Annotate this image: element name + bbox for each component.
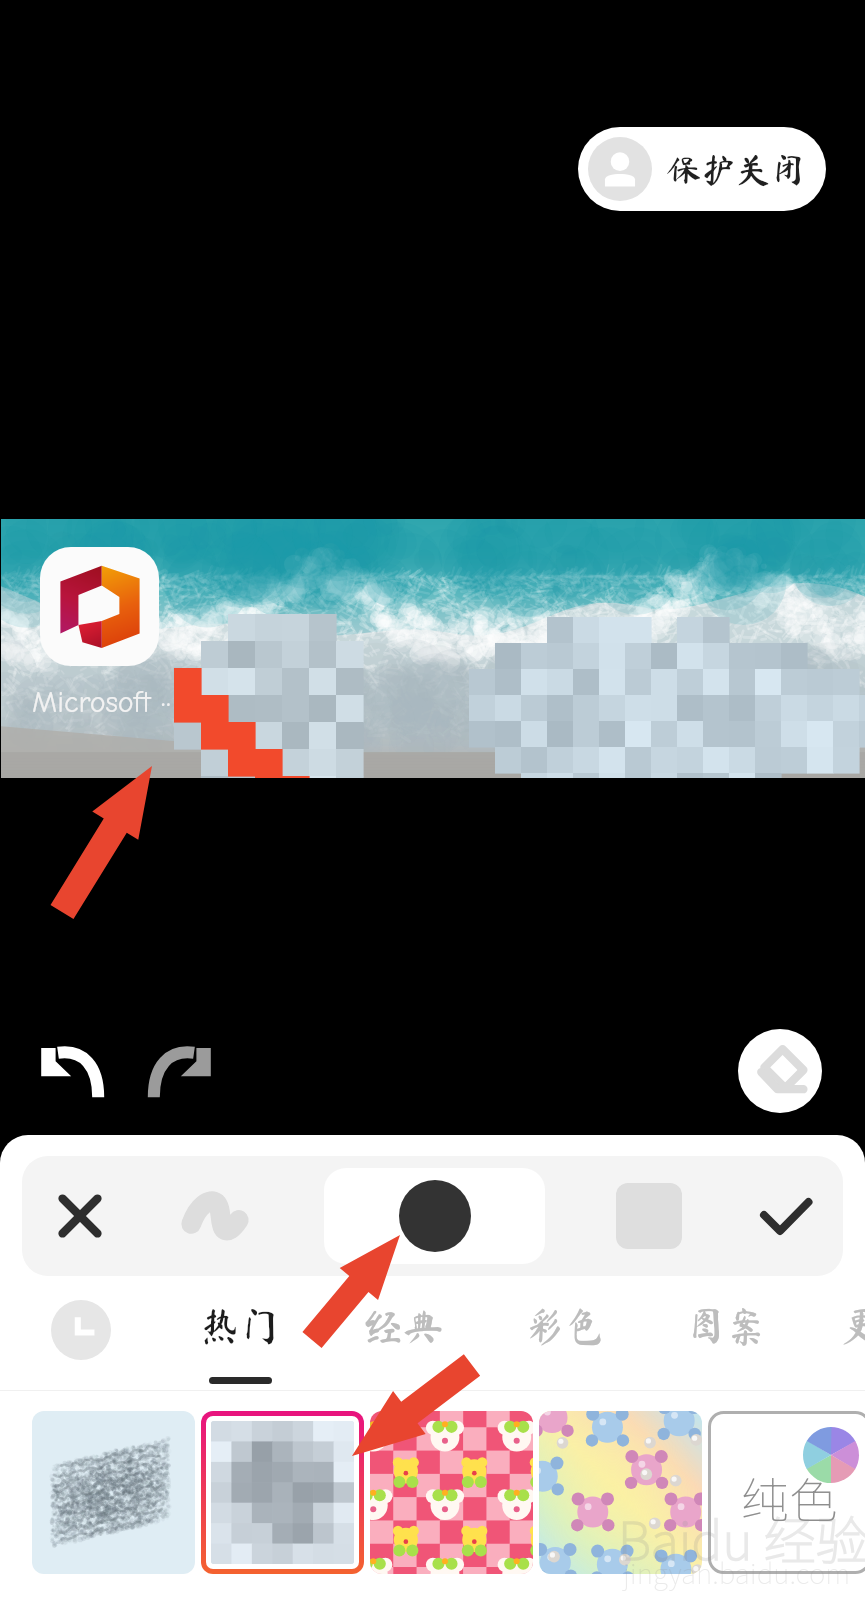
button[interactable]: Confirm: [736, 1166, 836, 1266]
button[interactable]: 经典: [347, 1306, 459, 1386]
staticText: jingyan.baidu.com: [623, 1552, 851, 1593]
staticText: 保护关闭: [666, 152, 807, 187]
button[interactable]: Recent: [51, 1300, 111, 1360]
button[interactable]: 图案: [670, 1306, 782, 1386]
staticText: 经典: [363, 1306, 443, 1346]
button[interactable]: Undo: [30, 1032, 110, 1112]
button[interactable]: Square brush size: [599, 1166, 699, 1266]
button[interactable]: [206, 1416, 359, 1569]
staticText: 纯色: [741, 1462, 838, 1532]
button[interactable]: Redo: [142, 1032, 222, 1112]
button[interactable]: 热门: [184, 1306, 296, 1386]
staticText: 热门: [200, 1306, 280, 1346]
button[interactable]: Microsoft Office: [40, 547, 159, 666]
button[interactable]: Cancel: [30, 1166, 130, 1266]
button[interactable]: Eraser: [738, 1029, 822, 1113]
button[interactable]: 更: [806, 1306, 865, 1386]
button[interactable]: Brush stroke: [165, 1166, 265, 1266]
button[interactable]: 纯色: [708, 1411, 865, 1574]
button[interactable]: 保护关闭: [578, 127, 826, 211]
staticText: 更: [842, 1306, 865, 1346]
button[interactable]: [370, 1411, 533, 1574]
staticText: Baidu 经验: [618, 1500, 865, 1575]
button[interactable]: 彩色: [509, 1306, 621, 1386]
staticText: 彩色: [525, 1306, 605, 1346]
staticText: 图案: [686, 1306, 766, 1346]
button[interactable]: [539, 1411, 702, 1574]
button[interactable]: Round brush size: [324, 1168, 545, 1264]
staticText: Microsoft ··: [32, 685, 172, 720]
button[interactable]: [32, 1411, 195, 1574]
